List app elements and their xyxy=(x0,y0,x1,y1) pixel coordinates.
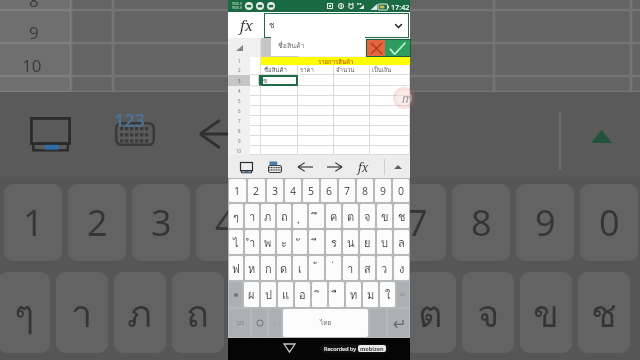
button[interactable]: ห xyxy=(245,256,259,280)
button[interactable]: ไ xyxy=(229,230,243,254)
button[interactable]: า xyxy=(343,256,358,280)
button[interactable]: 9 xyxy=(375,179,391,202)
staticText: ใ xyxy=(385,286,391,303)
button[interactable]: ด xyxy=(277,256,291,280)
button[interactable]: 3 xyxy=(267,179,283,202)
button[interactable]: ข xyxy=(377,204,392,228)
button[interactable]: ่ xyxy=(326,256,341,280)
staticText: 5 xyxy=(308,184,315,198)
staticText: ป xyxy=(265,286,272,303)
button[interactable]: ย xyxy=(360,230,375,254)
button[interactable]: อ xyxy=(295,282,310,307)
button[interactable]: น xyxy=(343,230,358,254)
staticText: 1 xyxy=(238,58,241,64)
button[interactable]: Next cell xyxy=(323,156,345,178)
button[interactable]: Expand formula bar xyxy=(393,20,404,31)
button[interactable]: Enter xyxy=(388,309,409,337)
button[interactable]: Collapse toolbar xyxy=(385,155,410,178)
button[interactable]: 5 xyxy=(303,179,319,202)
staticText: TRUE-H xyxy=(232,2,242,6)
button[interactable]: ำ xyxy=(245,230,259,254)
staticText: ชื่อสินค้า xyxy=(264,65,287,75)
staticText: จ xyxy=(477,283,500,343)
staticText: ง xyxy=(399,260,405,277)
button[interactable]: บ xyxy=(377,230,392,254)
staticText: m xyxy=(402,90,413,106)
button[interactable]: ว xyxy=(377,256,392,280)
button[interactable]: ใ xyxy=(380,282,395,307)
button[interactable]: 2 xyxy=(248,179,265,202)
button[interactable]: 7 xyxy=(339,179,355,202)
button[interactable]: ุ xyxy=(293,204,307,228)
button[interactable]: ผ xyxy=(244,282,259,307)
button[interactable]: ท xyxy=(346,282,361,307)
button[interactable]: ถ xyxy=(277,204,291,228)
button[interactable]: ื xyxy=(329,282,344,307)
button[interactable]: ั xyxy=(293,230,307,254)
button[interactable]: Back xyxy=(281,340,297,356)
button[interactable]: ต xyxy=(343,204,358,228)
button[interactable]: Delete xyxy=(397,282,409,307)
button[interactable]: Shift xyxy=(229,282,242,307)
button[interactable]: ฟ xyxy=(229,256,243,280)
button[interactable]: 1 xyxy=(229,179,246,202)
staticText: fx xyxy=(240,15,253,35)
staticText: 8 xyxy=(362,184,369,198)
staticText: . xyxy=(377,319,379,327)
button[interactable]: ึ xyxy=(309,204,324,228)
button[interactable]: ช xyxy=(261,75,298,86)
button[interactable]: Space xyxy=(283,309,368,337)
button[interactable]: Cancel xyxy=(367,40,385,56)
button[interactable]: ค xyxy=(326,204,341,228)
button[interactable]: เ xyxy=(293,256,307,280)
button[interactable]: ชื่อสินค้า xyxy=(271,34,365,56)
button[interactable]: ช xyxy=(264,13,409,38)
button[interactable]: Confirm xyxy=(385,40,410,56)
button[interactable]: ล xyxy=(394,230,409,254)
button[interactable]: จ xyxy=(360,204,375,228)
staticText: พ xyxy=(264,234,272,251)
button[interactable]: ก xyxy=(261,256,275,280)
staticText: 3 xyxy=(272,184,279,198)
button[interactable]: ร xyxy=(326,230,341,254)
button[interactable]: 0 xyxy=(393,179,409,202)
staticText: , xyxy=(274,319,276,327)
button[interactable]: Show screen xyxy=(236,157,256,177)
button[interactable]: ช xyxy=(394,204,409,228)
staticText: ห xyxy=(248,260,256,277)
staticText: ช xyxy=(263,76,268,86)
staticText: 5 xyxy=(238,98,241,104)
staticText: 4 xyxy=(238,88,241,94)
button[interactable]: 8 xyxy=(357,179,373,202)
button[interactable]: Numbers xyxy=(229,309,250,337)
staticText: ข xyxy=(381,208,389,225)
button[interactable]: ม xyxy=(363,282,378,307)
staticText: 8 xyxy=(29,0,39,12)
button[interactable]: Insert function xyxy=(228,12,264,38)
button[interactable]: Emoji xyxy=(252,309,267,337)
staticText: ส xyxy=(364,260,371,277)
button[interactable]: ้ xyxy=(309,256,324,280)
button[interactable]: ะ xyxy=(277,230,291,254)
button[interactable]: ี xyxy=(309,230,324,254)
staticText: 7 xyxy=(407,198,428,247)
staticText: ต xyxy=(347,208,355,225)
button[interactable]: พ xyxy=(261,230,275,254)
button[interactable]: ส xyxy=(360,256,375,280)
staticText: 2 xyxy=(87,198,108,247)
button[interactable]: า xyxy=(245,204,259,228)
button[interactable]: ิ xyxy=(312,282,327,307)
button[interactable]: Formula xyxy=(352,156,374,178)
button[interactable]: Previous cell xyxy=(294,156,316,178)
button[interactable]: ภ xyxy=(261,204,275,228)
button[interactable]: 4 xyxy=(285,179,301,202)
button[interactable]: Numeric keyboard xyxy=(265,157,285,177)
button[interactable]: แ xyxy=(278,282,293,307)
staticText: Recorded by xyxy=(324,345,358,352)
button[interactable]: 6 xyxy=(321,179,337,202)
button[interactable]: ง xyxy=(394,256,409,280)
button[interactable]: ป xyxy=(261,282,276,307)
button[interactable]: ๆ xyxy=(229,204,243,228)
